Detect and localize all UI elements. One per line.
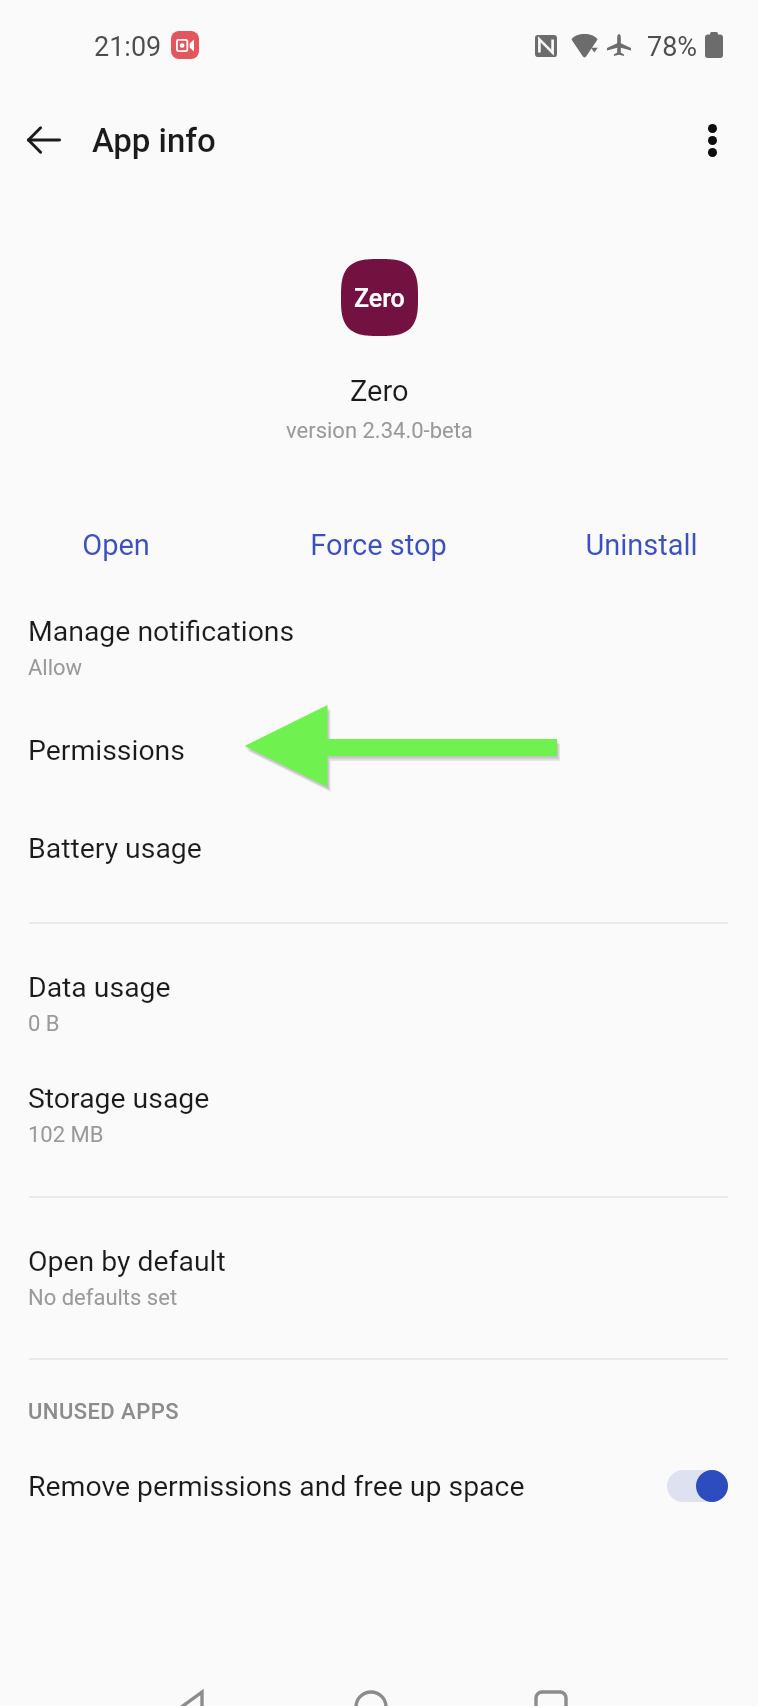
staticText: Open by default xyxy=(28,1245,226,1278)
staticText: Battery usage xyxy=(28,832,202,865)
button[interactable]: Data usage xyxy=(0,949,758,1059)
button[interactable]: Open by default xyxy=(0,1223,758,1333)
staticText: Allow xyxy=(28,655,83,681)
button[interactable]: Open xyxy=(0,513,236,577)
staticText: 102 MB xyxy=(28,1122,104,1148)
button[interactable]: Permissions xyxy=(0,712,758,800)
button[interactable]: Force stop xyxy=(258,513,498,577)
button[interactable]: Battery usage xyxy=(0,810,758,898)
button[interactable]: Back xyxy=(149,1668,229,1706)
staticText: 21:09 xyxy=(94,31,162,63)
staticText: 78% xyxy=(647,31,698,63)
button[interactable]: Remove permissions and free up space xyxy=(0,1455,758,1517)
staticText: Zero xyxy=(354,284,405,313)
button[interactable]: Recent apps xyxy=(511,1668,591,1706)
button[interactable]: Uninstall xyxy=(521,513,758,577)
staticText: Force stop xyxy=(310,528,447,562)
button[interactable]: Manage notifications xyxy=(0,593,758,703)
staticText: No defaults set xyxy=(28,1285,178,1311)
staticText: Uninstall xyxy=(585,528,698,562)
staticText: UNUSED APPS xyxy=(28,1399,179,1425)
button[interactable]: More options xyxy=(676,104,748,176)
staticText: Permissions xyxy=(28,734,185,767)
button[interactable]: Navigate up xyxy=(8,104,80,176)
staticText: Storage usage xyxy=(28,1082,210,1115)
staticText: 0 B xyxy=(28,1011,60,1037)
staticText: Data usage xyxy=(28,971,171,1004)
staticText: Remove permissions and free up space xyxy=(28,1470,667,1503)
staticText: Zero xyxy=(350,374,409,408)
button[interactable]: Storage usage xyxy=(0,1060,758,1170)
staticText: Manage notifications xyxy=(28,615,295,648)
button[interactable]: Home xyxy=(331,1668,411,1706)
staticText: App info xyxy=(92,121,216,160)
staticText: Open xyxy=(82,528,150,562)
staticText: version 2.34.0-beta xyxy=(286,418,473,444)
